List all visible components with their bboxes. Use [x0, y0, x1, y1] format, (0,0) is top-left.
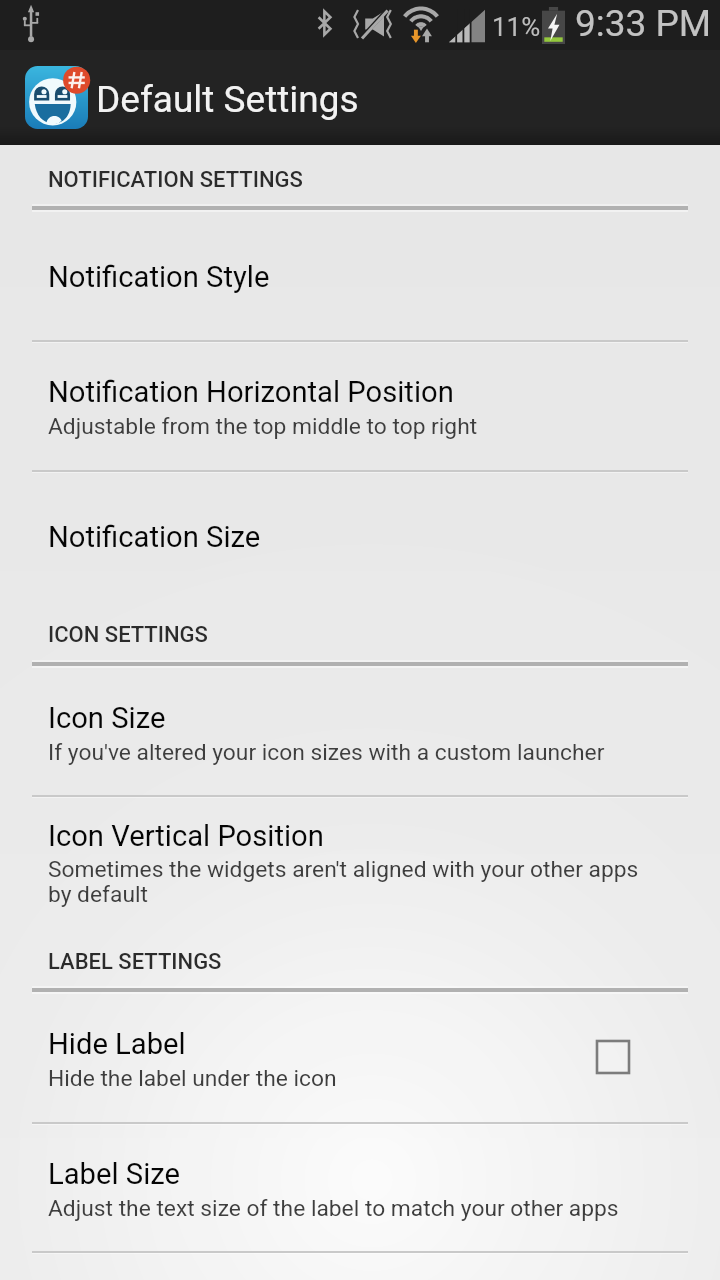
button[interactable] [0, 1125, 720, 1252]
staticText: Icon Size [48, 701, 166, 735]
staticText: If you've altered your icon sizes with a… [48, 739, 605, 766]
staticText: Hide the label under the icon [48, 1065, 337, 1092]
staticText: Default Settings [96, 78, 359, 121]
staticText: LABEL SETTINGS [48, 949, 222, 975]
staticText: Hide Label [48, 1027, 186, 1061]
button[interactable] [0, 992, 720, 1125]
button[interactable] [0, 145, 720, 210]
staticText: Icon Vertical Position [48, 819, 324, 853]
staticText: 9:33 PM [575, 2, 712, 45]
button[interactable] [0, 471, 720, 604]
button[interactable]: Hide Label checkbox [597, 1041, 629, 1073]
staticText: ICON SETTINGS [48, 622, 208, 648]
button[interactable] [0, 341, 720, 471]
staticText: Label Size [48, 1157, 180, 1191]
staticText: Notification Horizontal Position [48, 375, 454, 409]
button[interactable] [0, 796, 720, 930]
staticText: NOTIFICATION SETTINGS [48, 167, 303, 193]
staticText: Adjust the text size of the label to mat… [48, 1195, 619, 1222]
staticText: Notification Size [48, 520, 261, 554]
button[interactable] [0, 210, 720, 341]
button[interactable] [0, 666, 720, 796]
staticText: Adjustable from the top middle to top ri… [48, 413, 478, 440]
staticText: by default [48, 881, 148, 908]
staticText: 11% [492, 12, 541, 42]
button[interactable]: App icon [25, 66, 88, 129]
staticText: Sometimes the widgets aren't aligned wit… [48, 856, 639, 883]
staticText: Notification Style [48, 260, 270, 294]
